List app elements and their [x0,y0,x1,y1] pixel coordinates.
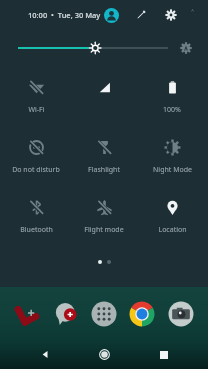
button[interactable]: Brightness [18,37,168,59]
button[interactable]: Home [89,340,119,369]
button[interactable]: Settings [161,5,181,25]
button[interactable]: Camera [164,297,198,331]
button[interactable]: Mobile signal [72,70,136,130]
button[interactable]: All apps [87,297,121,331]
button[interactable]: Do not disturb off [4,130,68,190]
staticText: Do not disturb [12,165,60,175]
button[interactable]: Battery 100 percent [140,70,204,130]
staticText: Wi-Fi [28,105,45,115]
button[interactable]: Collapse [191,5,194,25]
button[interactable]: Location on [140,190,204,250]
button[interactable]: Wi-Fi off [4,70,68,130]
button[interactable]: Back [30,340,60,369]
button[interactable]: Edit tiles [131,5,151,25]
staticText: 10:00 • Tue, 30 May [28,10,101,20]
staticText: Flashlight [88,165,120,175]
button[interactable]: Phone [10,297,44,331]
button[interactable]: Bluetooth off [4,190,68,250]
button[interactable]: Auto brightness [176,38,196,58]
button[interactable]: Flight mode off [72,190,136,250]
button[interactable]: User account [101,5,121,25]
button[interactable]: Messages [49,297,83,331]
staticText: Location [158,225,187,235]
button[interactable]: Night Mode off [140,130,204,190]
staticText: Flight mode [84,225,124,235]
button[interactable]: Chrome [125,297,159,331]
staticText: 100% [163,105,181,115]
button[interactable]: Recent apps [149,340,179,369]
staticText: Bluetooth [20,225,53,235]
button[interactable]: Flashlight off [72,130,136,190]
staticText: Night Mode [153,165,192,175]
